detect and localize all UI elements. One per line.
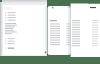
other: App overview <box>0 0 100 64</box>
